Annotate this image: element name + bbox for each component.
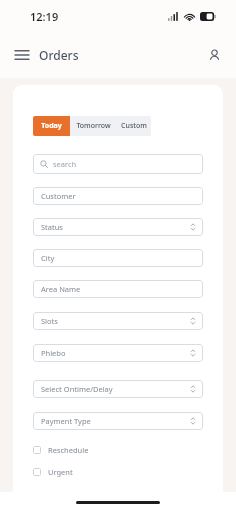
staticText: search bbox=[53, 159, 77, 169]
staticText: Slots bbox=[41, 316, 58, 326]
staticText: Tomorrow bbox=[76, 121, 111, 131]
button[interactable]: Select Ontime/Delay bbox=[33, 380, 203, 398]
staticText: Status bbox=[41, 222, 63, 232]
button[interactable]: Customer bbox=[33, 187, 203, 205]
button[interactable]: Phlebo bbox=[33, 344, 203, 362]
button[interactable]: Reschedule bbox=[33, 444, 203, 456]
staticText: Select Ontime/Delay bbox=[41, 384, 113, 394]
button[interactable]: Custom bbox=[117, 116, 151, 136]
button[interactable]: Account bbox=[200, 41, 228, 69]
staticText: City bbox=[41, 253, 55, 263]
button[interactable]: search bbox=[33, 154, 203, 174]
staticText: 12:19 bbox=[30, 9, 59, 24]
button[interactable]: Status bbox=[33, 218, 203, 236]
button[interactable]: Open navigation menu bbox=[8, 41, 36, 69]
staticText: Customer bbox=[41, 191, 76, 201]
staticText: Urgent bbox=[48, 467, 73, 477]
button[interactable]: Slots bbox=[33, 312, 203, 330]
button[interactable]: Urgent bbox=[33, 466, 203, 478]
button[interactable]: Area Name bbox=[33, 280, 203, 298]
staticText: Payment Type bbox=[41, 416, 91, 426]
button[interactable]: Tomorrow bbox=[70, 116, 117, 136]
button[interactable]: Today bbox=[33, 116, 70, 136]
staticText: Area Name bbox=[41, 284, 81, 294]
staticText: Orders bbox=[39, 47, 79, 63]
button[interactable]: Payment Type bbox=[33, 412, 203, 430]
staticText: Today bbox=[41, 121, 62, 131]
staticText: Custom bbox=[121, 121, 147, 131]
staticText: Reschedule bbox=[48, 445, 89, 455]
staticText: Phlebo bbox=[41, 348, 66, 358]
button[interactable]: City bbox=[33, 249, 203, 267]
